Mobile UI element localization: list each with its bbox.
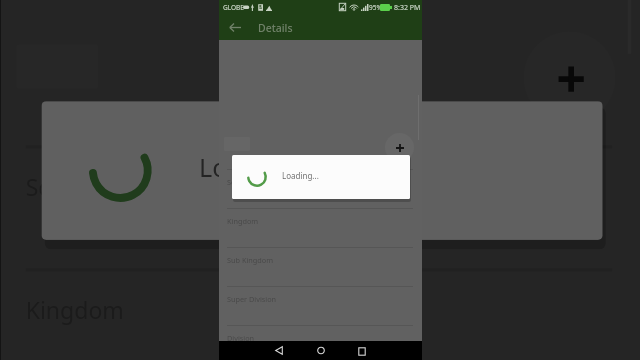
button[interactable]: Back: [274, 345, 284, 355]
button[interactable]: Back: [222, 14, 248, 40]
button[interactable]: Scientific Name: [219, 169, 422, 208]
staticText: Division: [227, 333, 255, 343]
staticText: Kingdom: [227, 216, 259, 226]
staticText: 95%: [369, 3, 382, 12]
staticText: Scientific Name: [26, 170, 193, 202]
staticText: Sub Kingdom: [227, 255, 274, 265]
button[interactable]: Division: [219, 325, 422, 341]
button[interactable]: Scientific Name: [0, 145, 640, 268]
button[interactable]: Kingdom: [0, 268, 640, 360]
staticText: Kingdom: [26, 293, 127, 325]
button[interactable]: Home: [316, 345, 326, 355]
button[interactable]: Add: [385, 133, 414, 162]
staticText: 8:32 PM: [394, 3, 421, 13]
button[interactable]: Recents: [357, 346, 367, 356]
staticText: Scientific Name: [227, 177, 280, 187]
staticText: Loading...: [199, 148, 316, 183]
button[interactable]: Add: [524, 32, 615, 123]
staticText: Loading...: [282, 170, 319, 181]
staticText: Super Division: [227, 294, 277, 304]
staticText: GLOBE: [223, 3, 244, 12]
staticText: Details: [258, 21, 293, 35]
